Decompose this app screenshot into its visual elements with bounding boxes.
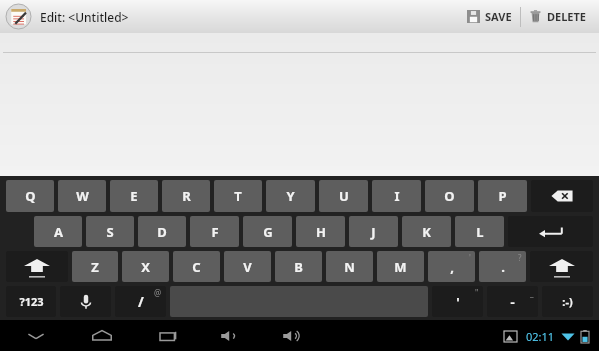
button[interactable]: SAVE xyxy=(459,0,520,33)
staticText: _ xyxy=(530,287,534,298)
staticText: B xyxy=(294,258,303,276)
button[interactable] xyxy=(0,33,599,176)
staticText: N xyxy=(344,258,355,276)
staticText: " xyxy=(475,287,479,298)
button[interactable]: J xyxy=(349,216,398,247)
button[interactable]: I xyxy=(372,180,421,212)
button[interactable]: Y xyxy=(266,180,315,212)
button[interactable]: Volume up xyxy=(272,322,312,350)
button[interactable]: U xyxy=(319,180,368,212)
button[interactable]: K xyxy=(402,216,451,247)
button[interactable]: C xyxy=(173,251,220,282)
button[interactable]: Z xyxy=(72,251,118,282)
button[interactable]: Home xyxy=(80,322,124,350)
staticText: DELETE xyxy=(547,9,587,24)
staticText: ? xyxy=(518,252,522,263)
staticText: O xyxy=(444,187,455,205)
staticText: K xyxy=(422,223,431,241)
button[interactable]: H xyxy=(296,216,345,247)
staticText: . xyxy=(501,258,505,276)
button[interactable]: W xyxy=(58,180,106,212)
button[interactable]: Enter xyxy=(508,216,593,247)
button[interactable]: G xyxy=(243,216,292,247)
button[interactable]: N xyxy=(326,251,373,282)
button[interactable]: Q xyxy=(6,180,54,212)
staticText: , xyxy=(450,258,454,276)
button[interactable]: B xyxy=(275,251,322,282)
button[interactable]: E xyxy=(110,180,158,212)
staticText: ?123 xyxy=(19,294,44,309)
staticText: Y xyxy=(286,187,295,205)
button[interactable]: / xyxy=(115,286,166,317)
button[interactable]: . xyxy=(479,251,526,282)
staticText: D xyxy=(157,223,167,241)
button[interactable]: O xyxy=(425,180,474,212)
staticText: Q xyxy=(25,187,36,205)
staticText: J xyxy=(371,223,376,241)
staticText: H xyxy=(316,223,326,241)
staticText: G xyxy=(263,223,273,241)
staticText: I xyxy=(394,187,400,205)
button[interactable]: Recent apps xyxy=(146,322,190,350)
button[interactable]: M xyxy=(377,251,424,282)
staticText: - xyxy=(510,293,515,311)
button[interactable]: A xyxy=(34,216,82,247)
staticText: P xyxy=(498,187,507,205)
staticText: C xyxy=(192,258,201,276)
button[interactable]: ?123 xyxy=(6,286,56,317)
staticText: Z xyxy=(91,258,99,276)
staticText: 02:11 xyxy=(526,329,555,344)
button[interactable]: App icon xyxy=(5,3,32,30)
button[interactable]: - xyxy=(487,286,538,317)
staticText: L xyxy=(476,223,484,241)
staticText: M xyxy=(394,258,407,276)
staticText: ' xyxy=(456,293,460,311)
button[interactable]: D xyxy=(138,216,186,247)
button[interactable]: F xyxy=(190,216,239,247)
staticText: A xyxy=(54,223,63,241)
staticText: V xyxy=(243,258,252,276)
staticText: Edit: <Untitled> xyxy=(40,9,129,25)
staticText: @ xyxy=(154,287,162,298)
button[interactable]: P xyxy=(478,180,527,212)
staticText: W xyxy=(76,187,89,205)
button[interactable]: Shift xyxy=(6,251,68,282)
staticText: F xyxy=(211,223,219,241)
staticText: T xyxy=(234,187,242,205)
button[interactable]: Screenshot xyxy=(499,324,521,348)
staticText: R xyxy=(182,187,191,205)
button[interactable]: :-) xyxy=(542,286,593,317)
button[interactable]: X xyxy=(122,251,169,282)
button[interactable]: ' xyxy=(432,286,483,317)
button[interactable]: DELETE xyxy=(521,0,595,33)
staticText: ' xyxy=(469,252,471,263)
button[interactable]: Volume down xyxy=(210,322,250,350)
button[interactable]: Backspace xyxy=(531,180,593,212)
staticText: E xyxy=(130,187,138,205)
button[interactable]: Shift xyxy=(530,251,593,282)
staticText: X xyxy=(141,258,150,276)
staticText: U xyxy=(339,187,349,205)
button[interactable]: R xyxy=(162,180,210,212)
button[interactable]: V xyxy=(224,251,271,282)
button[interactable]: Voice input xyxy=(60,286,111,317)
button[interactable]: Hide keyboard xyxy=(14,322,58,350)
staticText: S xyxy=(106,223,114,241)
button[interactable]: S xyxy=(86,216,134,247)
staticText: / xyxy=(138,292,144,311)
button[interactable]: L xyxy=(455,216,504,247)
button[interactable]: T xyxy=(214,180,262,212)
button[interactable]: , xyxy=(428,251,475,282)
staticText: :-) xyxy=(562,294,573,309)
staticText: SAVE xyxy=(485,9,512,24)
